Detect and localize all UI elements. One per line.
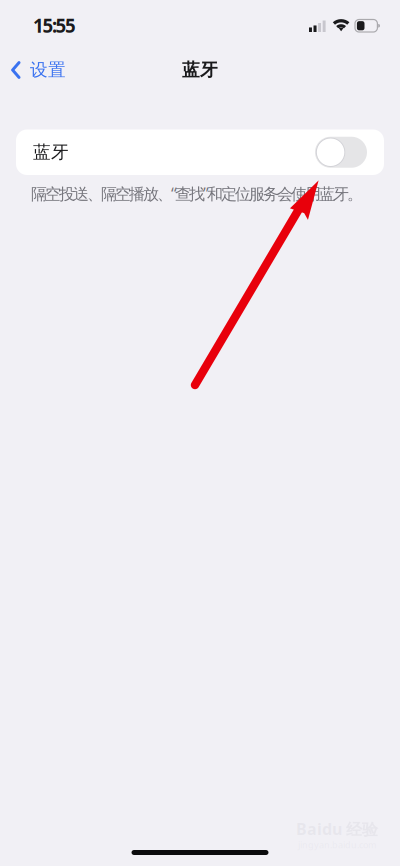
button[interactable]: 蓝牙: [16, 129, 384, 175]
staticText: Baidu 经验: [296, 818, 378, 840]
staticText: 15:55: [33, 13, 76, 38]
staticText: 隔空投送、隔空播放、“查找”和定位服务会使用蓝牙。: [31, 182, 363, 204]
staticText: 蓝牙: [33, 141, 69, 163]
staticText: 蓝牙: [182, 59, 218, 81]
button[interactable]: 设置: [0, 48, 76, 92]
staticText: 设置: [30, 59, 66, 81]
